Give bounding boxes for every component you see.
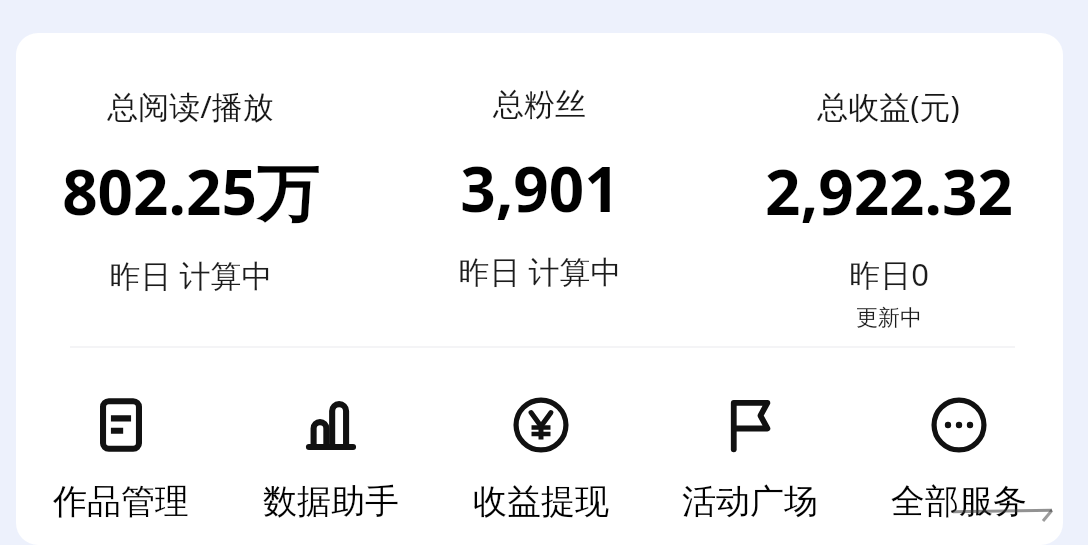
button[interactable]: 总粉丝 <box>365 85 714 292</box>
button[interactable]: 总阅读/播放 <box>16 85 365 296</box>
staticText: 昨日 计算中 <box>458 250 622 292</box>
staticText: 总阅读/播放 <box>107 85 274 127</box>
staticText: 802.25万 <box>62 149 319 234</box>
button[interactable]: 活动广场 <box>645 394 854 525</box>
staticText: 数据助手 <box>263 480 399 523</box>
staticText: 作品管理 <box>53 480 189 523</box>
button[interactable]: 收益提现 <box>436 394 645 525</box>
staticText: 3,901 <box>460 146 620 230</box>
staticText: 总粉丝 <box>493 85 586 124</box>
button[interactable]: 数据助手 <box>226 394 436 525</box>
staticText: 收益提现 <box>473 480 609 523</box>
button[interactable]: 总收益(元) <box>714 85 1063 332</box>
staticText: 活动广场 <box>682 480 818 523</box>
button[interactable]: 全部服务 <box>854 394 1063 525</box>
staticText: 更新中 <box>856 304 922 332</box>
button[interactable]: 作品管理 <box>16 394 226 525</box>
staticText: 昨日0 <box>849 253 929 295</box>
staticText: 总收益(元) <box>817 85 960 127</box>
staticText: 昨日 计算中 <box>109 254 273 296</box>
staticText: 2,922.32 <box>765 149 1013 233</box>
staticText: 全部服务 <box>891 480 1027 523</box>
